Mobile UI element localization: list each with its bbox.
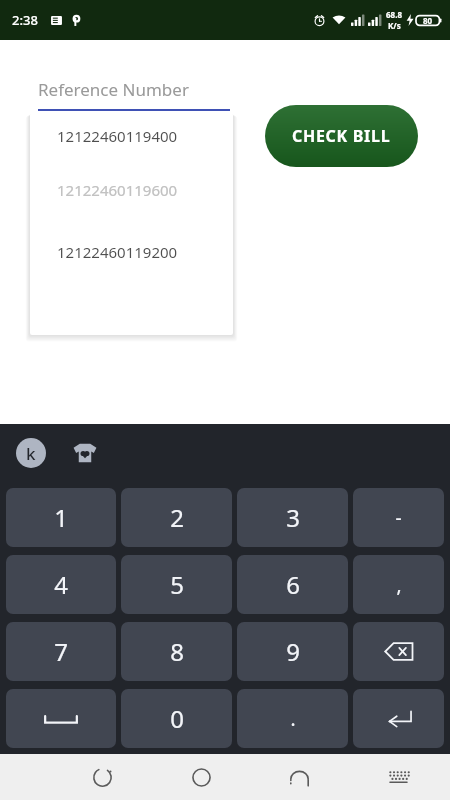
button[interactable]: Home <box>179 755 223 799</box>
staticText: 12122460119400 <box>57 126 178 146</box>
staticText: 5 <box>170 568 184 601</box>
button[interactable]: Backspace <box>353 622 444 681</box>
staticText: 6 <box>286 568 300 601</box>
button[interactable]: Hide keyboard <box>376 755 420 799</box>
staticText: 9 <box>286 635 300 668</box>
staticText: 7 <box>54 635 68 668</box>
staticText: 0 <box>170 702 184 735</box>
button[interactable]: 5 <box>121 555 232 614</box>
staticText: Reference Number <box>38 78 189 101</box>
staticText: 1 <box>54 501 68 534</box>
button[interactable]: CHECK BILL <box>265 105 418 167</box>
button[interactable]: 12122460119400 <box>30 113 233 159</box>
button[interactable]: , <box>353 555 444 614</box>
button[interactable]: 7 <box>6 622 116 681</box>
button[interactable]: 8 <box>121 622 232 681</box>
button[interactable]: 1 <box>6 488 116 547</box>
button[interactable]: Enter <box>353 689 444 748</box>
staticText: 2 <box>170 501 184 534</box>
button[interactable]: Themes <box>70 438 100 468</box>
button[interactable]: Space <box>6 689 116 748</box>
button[interactable]: 6 <box>237 555 348 614</box>
button[interactable]: 3 <box>237 488 348 547</box>
button[interactable]: 0 <box>121 689 232 748</box>
staticText: 2:38 <box>12 11 38 29</box>
staticText: 80 <box>423 15 433 26</box>
staticText: 12122460119600 <box>57 180 178 200</box>
button[interactable]: 12122460119200 <box>30 221 233 283</box>
staticText: 12122460119200 <box>57 242 178 262</box>
staticText: 8 <box>170 635 184 668</box>
button[interactable]: . <box>237 689 348 748</box>
button[interactable]: Keyboard settings <box>16 438 46 468</box>
button[interactable]: 9 <box>237 622 348 681</box>
staticText: k <box>26 442 36 465</box>
staticText: 3 <box>286 501 300 534</box>
button[interactable]: 12122460119600 <box>30 159 233 221</box>
button[interactable]: Recent apps <box>80 755 124 799</box>
staticText: CHECK BILL <box>292 125 391 147</box>
staticText: 4 <box>54 568 68 601</box>
staticText: . <box>290 706 296 732</box>
button[interactable]: - <box>353 488 444 547</box>
button[interactable]: 4 <box>6 555 116 614</box>
staticText: K/s <box>388 20 401 31</box>
staticText: 68.8 <box>386 9 402 20</box>
button[interactable]: 2 <box>121 488 232 547</box>
staticText: - <box>395 505 402 531</box>
button[interactable]: Back <box>277 755 321 799</box>
staticText: , <box>396 572 402 598</box>
